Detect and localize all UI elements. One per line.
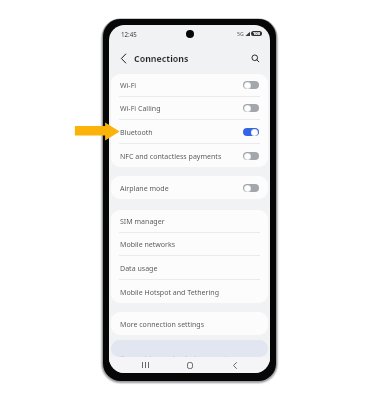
button[interactable]: Turn on bbox=[243, 104, 259, 112]
button[interactable]: Back bbox=[228, 358, 242, 372]
staticText: Connections bbox=[134, 53, 189, 65]
staticText: 5G bbox=[237, 30, 244, 37]
button[interactable]: Airplane mode bbox=[111, 176, 268, 199]
button[interactable]: Home bbox=[183, 358, 197, 372]
button[interactable]: Turn on bbox=[243, 152, 259, 160]
staticText: Wi-Fi bbox=[120, 80, 137, 90]
staticText: 100 bbox=[253, 31, 261, 36]
button[interactable]: Data usage bbox=[111, 256, 268, 279]
staticText: Mobile Hotspot and Tethering bbox=[120, 287, 219, 297]
button[interactable]: Mobile Hotspot and Tethering bbox=[111, 280, 268, 303]
button[interactable]: Back bbox=[116, 51, 131, 66]
button[interactable]: Turn on bbox=[243, 184, 259, 192]
button[interactable]: Recent apps bbox=[137, 358, 151, 372]
button[interactable]: SIM manager bbox=[111, 210, 268, 232]
button[interactable]: More connection settings bbox=[111, 312, 268, 335]
staticText: Wi-Fi Calling bbox=[120, 103, 161, 113]
button[interactable]: Turn on bbox=[243, 81, 259, 89]
staticText: Airplane mode bbox=[120, 183, 169, 193]
button[interactable]: Mobile networks bbox=[111, 233, 268, 255]
button[interactable]: Search bbox=[248, 51, 263, 66]
button[interactable]: NFC and contactless payments bbox=[111, 144, 268, 167]
staticText: Bluetooth bbox=[120, 127, 153, 137]
staticText: SIM manager bbox=[120, 216, 165, 226]
button[interactable]: Turn off bbox=[243, 128, 259, 136]
button[interactable]: Wi-Fi Calling bbox=[111, 97, 268, 119]
staticText: NFC and contactless payments bbox=[120, 151, 222, 161]
button[interactable]: Wi-Fi bbox=[111, 74, 268, 96]
staticText: Data usage bbox=[120, 263, 158, 273]
staticText: 12:45 bbox=[121, 30, 137, 38]
staticText: Mobile networks bbox=[120, 239, 176, 249]
button[interactable]: Bluetooth bbox=[111, 120, 268, 143]
staticText: More connection settings bbox=[120, 319, 205, 329]
